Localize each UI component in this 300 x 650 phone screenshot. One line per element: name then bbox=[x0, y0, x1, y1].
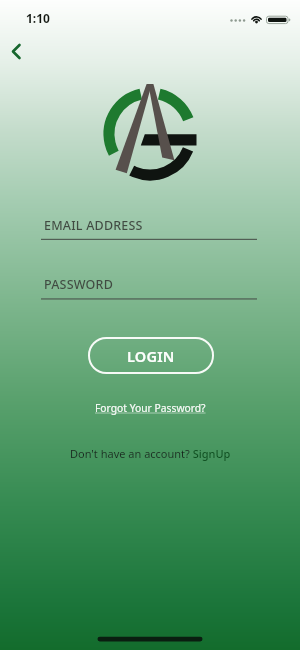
button[interactable]: LOGIN bbox=[88, 337, 214, 374]
staticText: PASSWORD bbox=[44, 276, 114, 293]
button[interactable]: EMAIL ADDRESS bbox=[41, 214, 257, 240]
staticText: 1:10 bbox=[26, 10, 50, 26]
button[interactable]: Don't have an account? SignUp bbox=[70, 446, 231, 461]
staticText: EMAIL ADDRESS bbox=[44, 217, 143, 234]
button[interactable]: Forgot Your Password? bbox=[95, 401, 206, 415]
staticText: LOGIN bbox=[127, 346, 175, 366]
button[interactable]: PASSWORD bbox=[41, 273, 257, 299]
button[interactable] bbox=[6, 38, 32, 64]
